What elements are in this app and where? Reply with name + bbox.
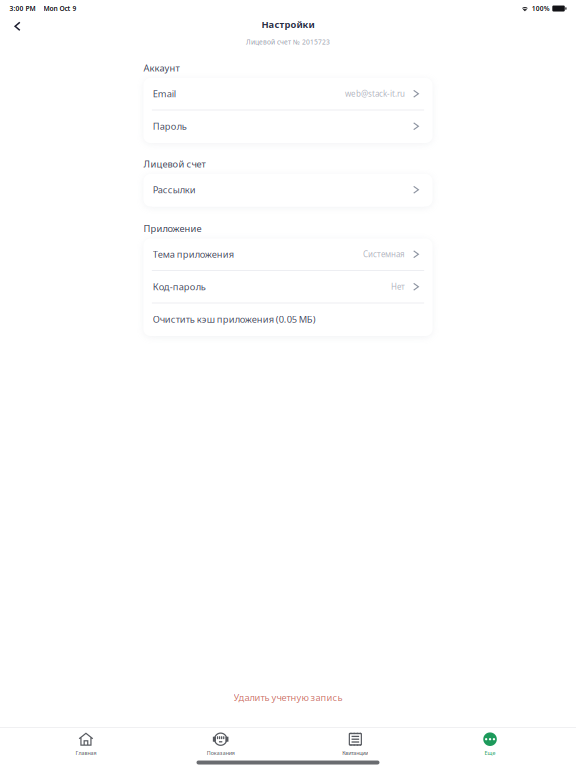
button[interactable]: Рассылки	[143, 174, 432, 206]
button[interactable]: Показания	[153, 728, 288, 759]
staticText: Настройки	[261, 18, 314, 31]
button[interactable]: Код-пароль	[143, 271, 432, 303]
staticText: web@stack-it.ru	[345, 88, 405, 99]
staticText: Системная	[363, 249, 405, 259]
staticText: Тема приложения	[153, 248, 234, 260]
staticText: Аккаунт	[143, 62, 179, 74]
button[interactable]: Пароль	[143, 110, 432, 143]
staticText: Лицевой счет	[143, 158, 205, 170]
staticText: Рассылки	[153, 184, 196, 196]
staticText: 100%	[532, 4, 550, 13]
staticText: Нет	[391, 281, 405, 292]
staticText: Email	[153, 88, 176, 100]
staticText: Еще	[484, 749, 495, 756]
staticText: Показания	[207, 749, 235, 756]
staticText: Лицевой счет № 2015723	[246, 38, 330, 46]
staticText: Главная	[75, 749, 96, 756]
staticText: Квитанции	[342, 749, 368, 756]
button[interactable]: Еще	[423, 728, 557, 759]
button[interactable]: Квитанции	[288, 728, 423, 759]
button[interactable]: Back	[0, 17, 30, 40]
button[interactable]: Тема приложения	[143, 238, 432, 271]
button[interactable]: Главная	[19, 728, 153, 759]
button[interactable]: Email	[143, 78, 432, 110]
button[interactable]: Очистить кэш приложения (0.05 МБ)	[143, 303, 432, 336]
button[interactable]: Удалить учетную запись	[198, 687, 378, 707]
staticText: Пароль	[153, 120, 187, 132]
staticText: 3:00 PM	[9, 4, 35, 13]
staticText: Очистить кэш приложения (0.05 МБ)	[153, 313, 316, 325]
staticText: Код-пароль	[153, 281, 206, 293]
staticText: Приложение	[143, 222, 201, 235]
staticText: Удалить учетную запись	[233, 691, 342, 703]
staticText: Mon Oct 9	[43, 4, 76, 13]
